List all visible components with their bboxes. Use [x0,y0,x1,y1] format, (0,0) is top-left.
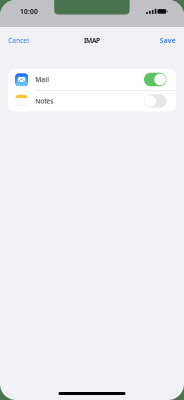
staticText: Save [160,36,176,45]
staticText: Mail [35,75,49,84]
button[interactable]: Cancel [0,31,35,50]
button[interactable]: Mail [8,69,176,90]
button[interactable]: Notes [8,90,176,111]
staticText: 10:00 [20,7,38,16]
staticText: IMAP [84,36,100,45]
button[interactable]: Save [154,31,184,50]
staticText: Cancel [8,36,29,45]
staticText: Notes [35,97,53,105]
